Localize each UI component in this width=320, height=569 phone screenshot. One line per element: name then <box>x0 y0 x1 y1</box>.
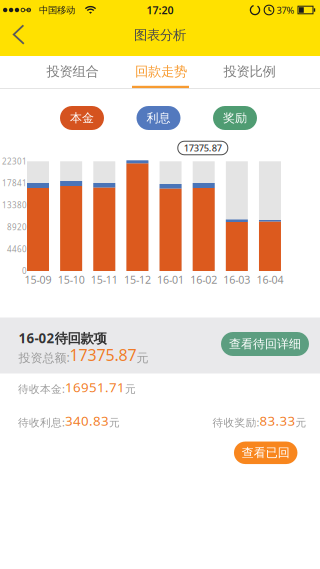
staticText: 17375.87 <box>184 142 222 154</box>
staticText: 元 <box>109 416 120 429</box>
staticText: 17:20 <box>146 3 173 17</box>
staticText: 22301 <box>2 156 27 167</box>
staticText: 投资比例 <box>223 63 275 80</box>
button[interactable]: 奖励 <box>213 106 257 130</box>
staticText: 83.33 <box>259 412 295 429</box>
staticText: 17375.87 <box>69 344 136 365</box>
staticText: 17841 <box>2 178 27 188</box>
button[interactable]: 利息 <box>136 106 180 130</box>
staticText: 16-03 <box>223 272 250 287</box>
staticText: 15-09 <box>24 272 51 287</box>
staticText: 元 <box>295 416 306 429</box>
staticText: 元 <box>136 351 148 365</box>
staticText: 投资总额: <box>18 349 69 365</box>
staticText: 图表分析 <box>134 27 186 43</box>
staticText: 利息 <box>146 111 170 125</box>
staticText: 15-11 <box>91 272 118 287</box>
button[interactable]: 回款走势 <box>117 56 205 86</box>
staticText: 37% <box>276 4 294 16</box>
staticText: 4460 <box>7 244 27 254</box>
staticText: 16-04 <box>256 272 283 287</box>
staticText: 340.83 <box>65 412 109 429</box>
staticText: 16951.71 <box>65 378 125 396</box>
staticText: 奖励 <box>223 111 247 125</box>
staticText: 查看已回 <box>242 445 290 460</box>
button[interactable] <box>0 20 44 56</box>
staticText: 投资组合 <box>46 63 98 80</box>
staticText: 0 <box>22 266 27 276</box>
button[interactable]: 本金 <box>60 106 104 130</box>
staticText: 16-01 <box>157 272 184 287</box>
staticText: 待收本金: <box>18 382 65 396</box>
staticText: 回款走势 <box>135 63 187 80</box>
staticText: 待收利息: <box>18 415 65 429</box>
staticText: 16-02待回款项 <box>18 329 106 347</box>
staticText: 16-02 <box>190 272 217 287</box>
staticText: 15-10 <box>58 272 85 287</box>
button[interactable]: 投资组合 <box>28 56 116 86</box>
staticText: 待收奖励: <box>212 415 259 429</box>
button[interactable]: 投资比例 <box>205 56 293 86</box>
staticText: 15-12 <box>124 272 151 287</box>
button[interactable]: 查看待回详细 <box>221 332 309 356</box>
staticText: 查看待回详细 <box>229 337 301 351</box>
staticText: 8920 <box>7 222 27 232</box>
button[interactable]: 查看已回 <box>234 442 297 464</box>
staticText: 元 <box>125 383 136 396</box>
staticText: 13380 <box>2 200 27 210</box>
staticText: 本金 <box>70 111 94 125</box>
staticText: 中国移动 <box>39 4 75 16</box>
